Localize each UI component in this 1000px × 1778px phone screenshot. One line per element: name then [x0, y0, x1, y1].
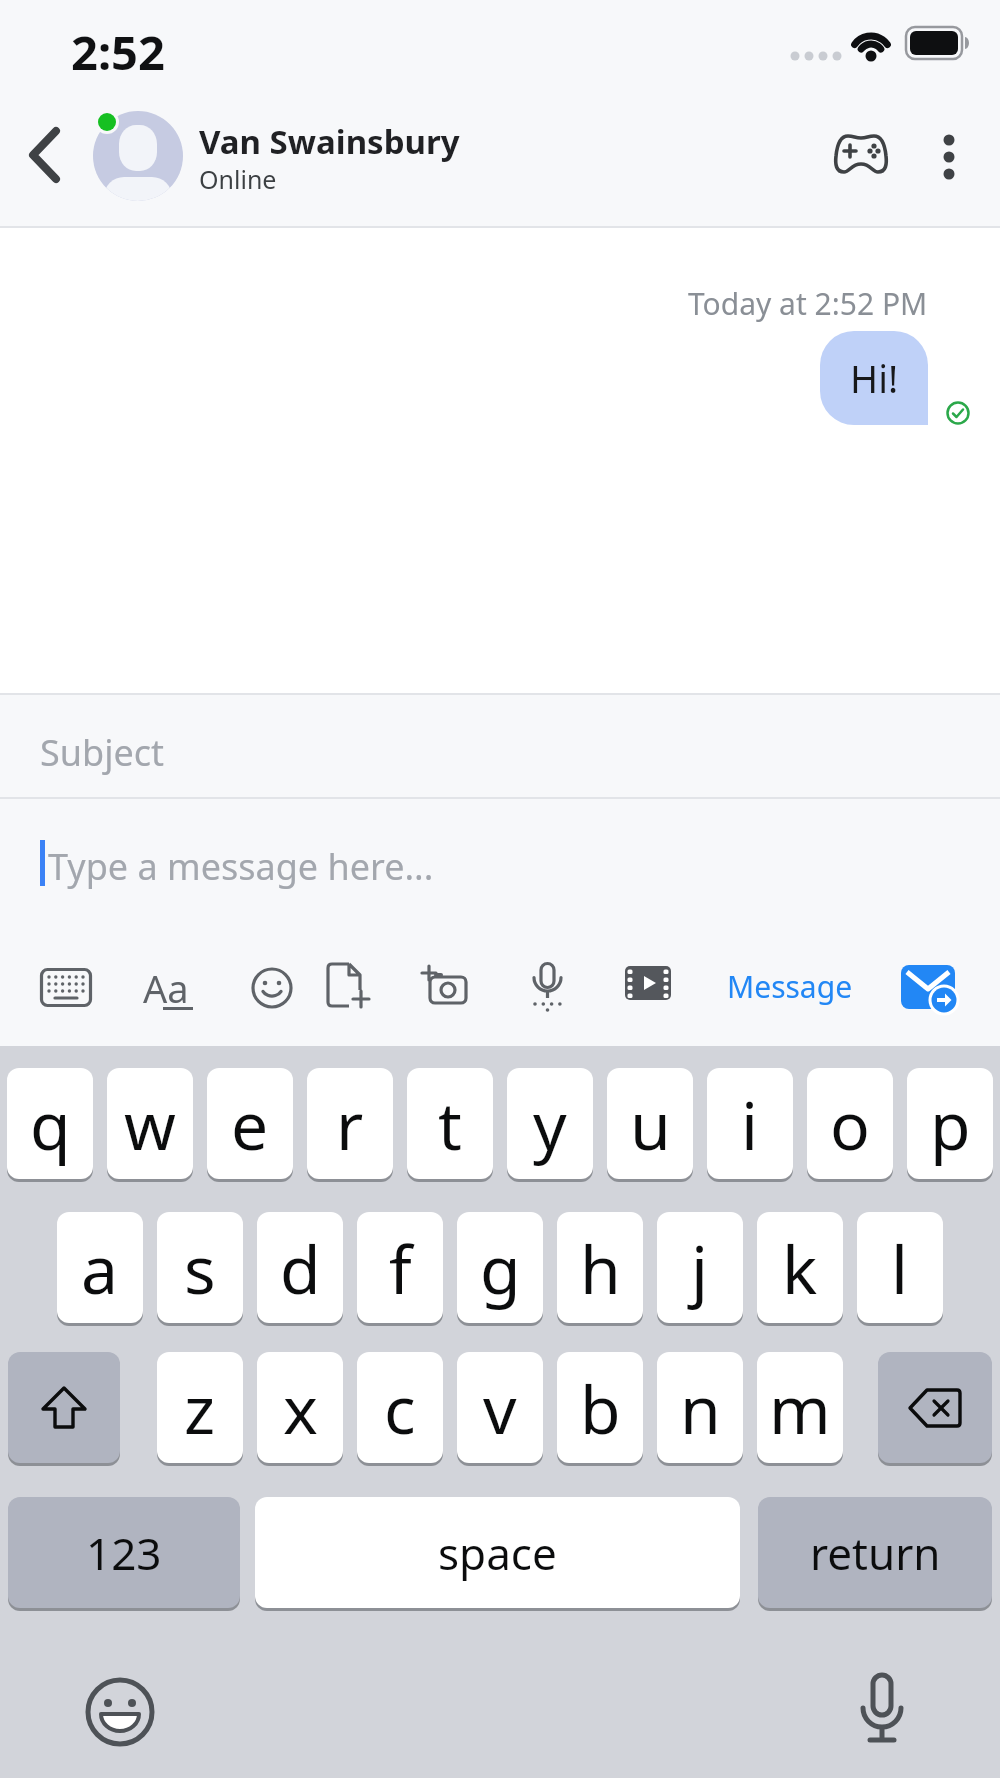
button[interactable]: [852, 1672, 912, 1752]
staticText: 2:52: [71, 20, 165, 84]
button[interactable]: Message: [727, 966, 853, 1007]
button[interactable]: b: [557, 1352, 643, 1463]
staticText: h: [580, 1223, 621, 1313]
button[interactable]: a: [57, 1212, 143, 1323]
staticText: Hi!: [850, 352, 899, 404]
staticText: m: [769, 1363, 831, 1453]
button[interactable]: r: [307, 1068, 393, 1179]
button[interactable]: [938, 130, 960, 186]
button[interactable]: s: [157, 1212, 243, 1323]
button[interactable]: [878, 1352, 992, 1463]
staticText: f: [389, 1223, 412, 1313]
button[interactable]: h: [557, 1212, 643, 1323]
button[interactable]: i: [707, 1068, 793, 1179]
button[interactable]: w: [107, 1068, 193, 1179]
staticText: Aa: [143, 962, 189, 1014]
button[interactable]: x: [257, 1352, 343, 1463]
button[interactable]: [834, 132, 888, 176]
button[interactable]: [325, 962, 373, 1012]
staticText: return: [810, 1523, 941, 1583]
staticText: v: [483, 1363, 517, 1453]
button[interactable]: m: [757, 1352, 843, 1463]
staticText: 123: [86, 1523, 162, 1583]
button[interactable]: n: [657, 1352, 743, 1463]
staticText: d: [280, 1223, 321, 1313]
staticText: Van Swainsbury: [199, 119, 460, 164]
staticText: b: [580, 1363, 621, 1453]
button[interactable]: [24, 126, 64, 184]
staticText: Message: [727, 966, 853, 1007]
staticText: r: [336, 1079, 364, 1169]
staticText: Type a message here...: [48, 842, 434, 891]
button[interactable]: [0, 695, 1000, 797]
button[interactable]: return: [758, 1497, 992, 1608]
button[interactable]: [93, 111, 183, 201]
button[interactable]: v: [457, 1352, 543, 1463]
button[interactable]: space: [255, 1497, 740, 1608]
button[interactable]: u: [607, 1068, 693, 1179]
staticText: w: [124, 1079, 176, 1169]
button[interactable]: [40, 968, 92, 1008]
staticText: z: [184, 1363, 216, 1453]
button[interactable]: [420, 964, 468, 1006]
staticText: y: [533, 1079, 567, 1169]
staticText: k: [782, 1223, 818, 1313]
button[interactable]: f: [357, 1212, 443, 1323]
button[interactable]: k: [757, 1212, 843, 1323]
staticText: n: [680, 1363, 721, 1453]
button[interactable]: o: [807, 1068, 893, 1179]
staticText: q: [30, 1079, 71, 1169]
button[interactable]: [530, 962, 566, 1012]
staticText: Subject: [40, 728, 165, 777]
staticText: space: [438, 1523, 557, 1583]
button[interactable]: e: [207, 1068, 293, 1179]
staticText: Today at 2:52 PM: [688, 283, 928, 324]
button[interactable]: g: [457, 1212, 543, 1323]
staticText: i: [741, 1079, 759, 1169]
staticText: p: [930, 1079, 971, 1169]
button[interactable]: j: [657, 1212, 743, 1323]
button[interactable]: [625, 966, 671, 1000]
button[interactable]: 123: [8, 1497, 240, 1608]
staticText: g: [480, 1223, 521, 1313]
staticText: a: [81, 1223, 119, 1313]
button[interactable]: q: [7, 1068, 93, 1179]
staticText: t: [438, 1079, 462, 1169]
staticText: Online: [199, 162, 277, 196]
staticText: c: [384, 1363, 416, 1453]
staticText: u: [630, 1079, 671, 1169]
button[interactable]: z: [157, 1352, 243, 1463]
staticText: l: [891, 1223, 909, 1313]
staticText: e: [231, 1079, 269, 1169]
staticText: s: [184, 1223, 216, 1313]
button[interactable]: [8, 1352, 120, 1463]
button[interactable]: d: [257, 1212, 343, 1323]
button[interactable]: p: [907, 1068, 993, 1179]
button[interactable]: c: [357, 1352, 443, 1463]
button[interactable]: y: [507, 1068, 593, 1179]
staticText: j: [691, 1223, 709, 1313]
staticText: x: [283, 1363, 318, 1453]
button[interactable]: [85, 1677, 155, 1747]
button[interactable]: Hi!: [820, 331, 928, 425]
button[interactable]: [901, 963, 959, 1013]
staticText: o: [830, 1079, 870, 1169]
button[interactable]: l: [857, 1212, 943, 1323]
button[interactable]: [251, 967, 293, 1009]
button[interactable]: t: [407, 1068, 493, 1179]
